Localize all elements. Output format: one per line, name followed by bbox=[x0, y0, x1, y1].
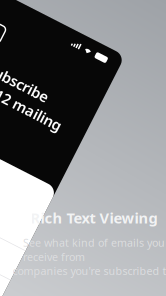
staticText: Rich Text Viewing bbox=[30, 208, 157, 227]
staticText: See what kind of emails you receive from bbox=[23, 235, 165, 264]
staticText: companies you're subscribed to. bbox=[12, 264, 166, 278]
staticText: Unsubscribe from 12 mailing lists bbox=[0, 67, 33, 125]
